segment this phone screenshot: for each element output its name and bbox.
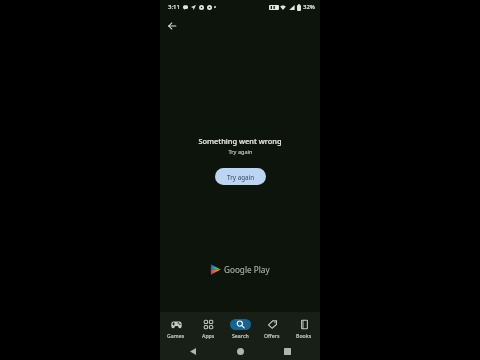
staticText: Search	[232, 332, 249, 339]
button[interactable]: Games	[160, 312, 192, 342]
staticText: Try again	[227, 173, 255, 181]
button[interactable]: Back	[164, 18, 180, 34]
button[interactable]: Apps	[192, 312, 224, 342]
staticText: Books	[296, 332, 312, 339]
button[interactable]: Search	[224, 312, 256, 342]
button[interactable]: Try again	[215, 168, 266, 185]
button[interactable]: Back	[185, 343, 201, 359]
staticText: Apps	[202, 332, 215, 339]
staticText: 3:11	[168, 3, 180, 11]
staticText: Google Play	[224, 264, 270, 275]
button[interactable]: Recent apps	[279, 343, 295, 359]
staticText: 32%	[303, 3, 315, 11]
staticText: Games	[167, 332, 185, 339]
staticText: Try again	[228, 148, 253, 156]
staticText: Offers	[264, 332, 280, 339]
button[interactable]: Home	[232, 343, 248, 359]
button[interactable]: Offers	[256, 312, 288, 342]
button[interactable]: Books	[288, 312, 320, 342]
staticText: Something went wrong	[198, 136, 282, 146]
